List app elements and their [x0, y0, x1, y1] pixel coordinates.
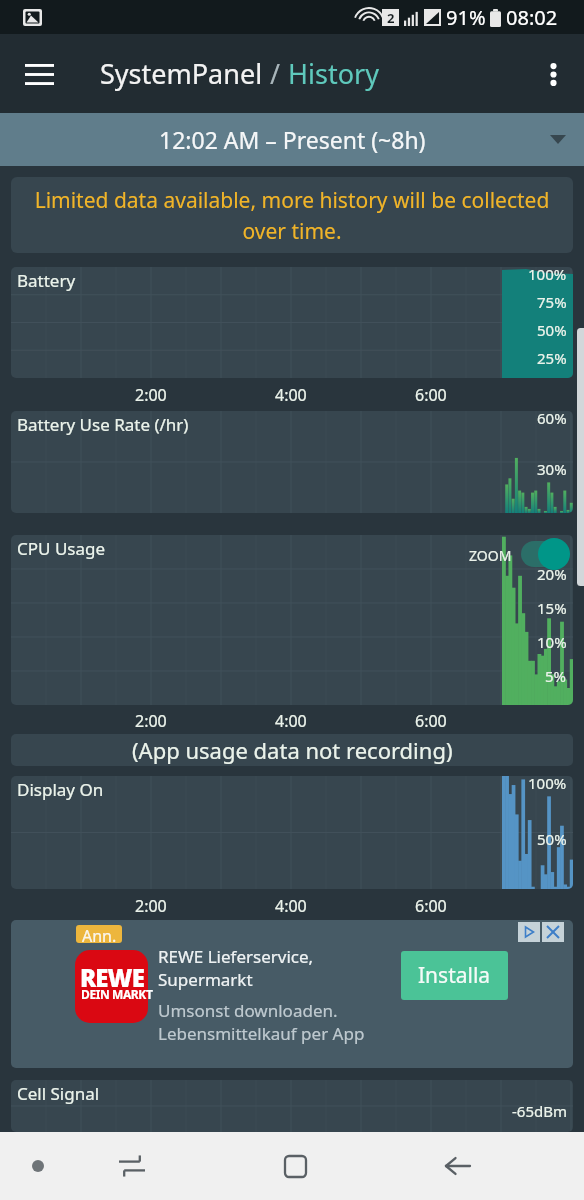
button[interactable]: Zoom toggle	[469, 538, 570, 570]
staticText: REWE Lieferservice, Supermarkt	[158, 945, 314, 991]
staticText: REWE	[80, 961, 144, 994]
staticText: DEIN MARKT	[81, 986, 153, 1002]
staticText: -65dBm	[512, 1101, 567, 1121]
staticText: History	[288, 55, 379, 92]
button[interactable]: More options	[527, 48, 579, 100]
staticText: 50%	[537, 829, 567, 849]
staticText: 5%	[545, 666, 567, 686]
staticText: 2	[387, 9, 395, 26]
staticText: Battery Use Rate (/hr)	[17, 413, 189, 436]
button[interactable]: Home	[271, 1132, 319, 1200]
staticText: 6:00	[415, 895, 447, 917]
staticText: 30%	[537, 459, 567, 479]
staticText: SystemPanel	[100, 55, 270, 92]
staticText: Display On	[17, 778, 104, 801]
staticText: 50%	[537, 320, 567, 340]
staticText: 08:02	[506, 4, 558, 31]
staticText: Umsonst downloaden. Lebensmittelkauf per…	[158, 999, 365, 1045]
staticText: Ann.	[82, 925, 117, 943]
button[interactable]: Installa	[401, 951, 508, 1000]
button[interactable]: Recent apps	[108, 1132, 156, 1200]
button[interactable]: Assistant	[14, 1132, 62, 1200]
staticText: 100%	[528, 776, 567, 793]
button[interactable]: Open navigation drawer	[10, 45, 68, 103]
staticText: 4:00	[275, 710, 307, 732]
staticText: 2:00	[135, 895, 167, 917]
staticText: 6:00	[415, 384, 447, 406]
staticText: 2:00	[135, 710, 167, 732]
staticText: 75%	[537, 292, 567, 312]
staticText: 25%	[537, 348, 567, 368]
staticText: Installa	[418, 961, 491, 990]
staticText: 6:00	[415, 710, 447, 732]
staticText: 60%	[537, 411, 567, 428]
staticText: Battery	[17, 269, 76, 292]
staticText: Cell Signal	[17, 1082, 100, 1105]
staticText: 20%	[537, 564, 567, 584]
staticText: 4:00	[275, 384, 307, 406]
staticText: /	[270, 55, 288, 92]
staticText: CPU Usage	[17, 537, 106, 560]
staticText: 2:00	[135, 384, 167, 406]
button[interactable]: 12:02 AM – Present (~8h)	[0, 113, 584, 166]
staticText: Limited data available, more history wil…	[21, 186, 563, 245]
staticText: 91%	[446, 4, 486, 31]
staticText: 100%	[528, 267, 567, 284]
staticText: 15%	[537, 598, 567, 618]
staticText: (App usage data not recording)	[132, 735, 453, 765]
staticText: 4:00	[275, 895, 307, 917]
staticText: 12:02 AM – Present (~8h)	[159, 124, 426, 155]
staticText: 10%	[537, 632, 567, 652]
button[interactable]: Back	[433, 1132, 481, 1200]
staticText: ZOOM	[469, 546, 512, 565]
